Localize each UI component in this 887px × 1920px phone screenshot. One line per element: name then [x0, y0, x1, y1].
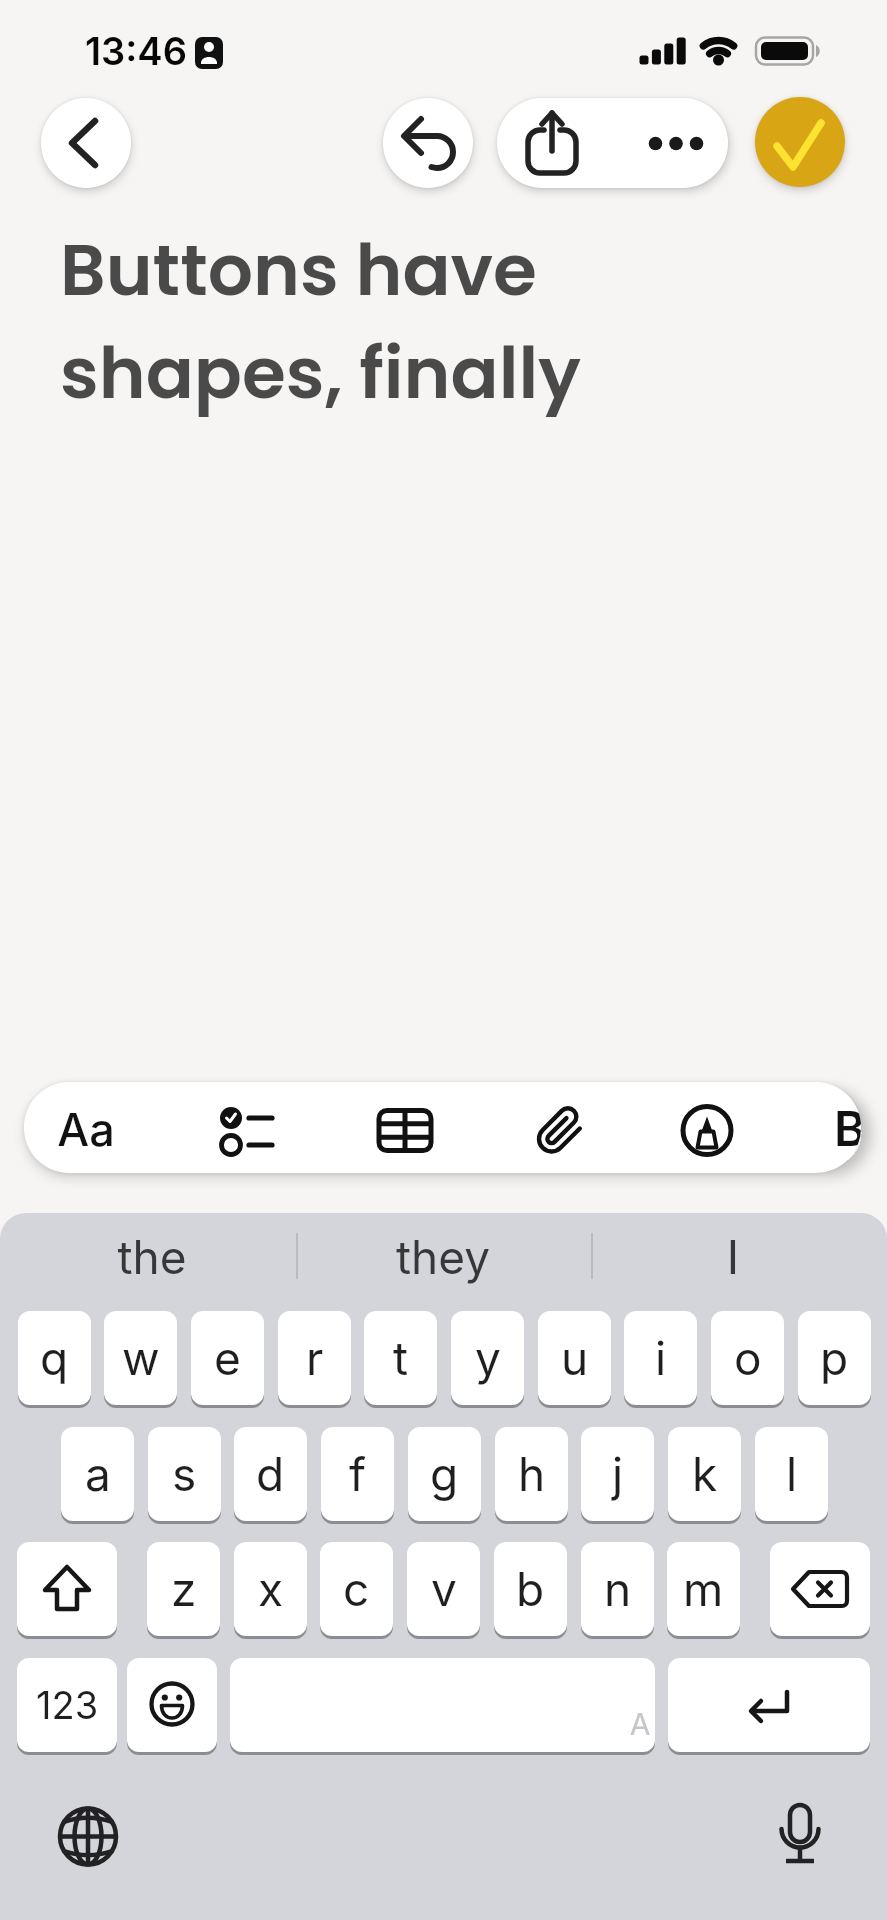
button[interactable]: [330, 1082, 460, 1173]
staticText: w: [122, 1330, 160, 1386]
staticText: x: [258, 1561, 284, 1617]
button[interactable]: [62, 1231, 242, 1291]
button[interactable]: d: [234, 1427, 307, 1524]
button[interactable]: q: [18, 1311, 91, 1408]
staticText: f: [349, 1446, 367, 1502]
button[interactable]: f: [321, 1427, 394, 1524]
button[interactable]: [630, 1082, 760, 1173]
button[interactable]: [497, 98, 613, 188]
button[interactable]: [41, 98, 131, 188]
staticText: r: [306, 1330, 324, 1386]
button[interactable]: w: [104, 1311, 177, 1408]
button[interactable]: [480, 1082, 610, 1173]
button[interactable]: 123: [17, 1658, 117, 1755]
button[interactable]: [613, 98, 728, 188]
button[interactable]: [127, 1658, 217, 1755]
staticText: v: [431, 1561, 457, 1617]
button[interactable]: [24, 1082, 164, 1173]
button[interactable]: g: [408, 1427, 481, 1524]
staticText: p: [820, 1330, 849, 1386]
button[interactable]: [230, 1658, 655, 1755]
staticText: a: [85, 1446, 111, 1502]
button[interactable]: p: [798, 1311, 871, 1408]
staticText: s: [172, 1446, 197, 1502]
button[interactable]: v: [407, 1542, 480, 1639]
button[interactable]: [770, 1542, 870, 1639]
button[interactable]: [755, 97, 845, 187]
staticText: q: [40, 1330, 69, 1386]
staticText: i: [655, 1330, 667, 1386]
staticText: l: [786, 1446, 798, 1502]
staticText: e: [214, 1330, 241, 1386]
button[interactable]: m: [667, 1542, 740, 1639]
button[interactable]: [180, 1082, 310, 1173]
staticText: t: [393, 1330, 409, 1386]
button[interactable]: e: [191, 1311, 264, 1408]
staticText: b: [516, 1561, 545, 1617]
staticText: Aa: [41, 1102, 131, 1173]
button[interactable]: b: [494, 1542, 567, 1639]
button[interactable]: r: [278, 1311, 351, 1408]
button[interactable]: [383, 98, 473, 188]
button[interactable]: n: [581, 1542, 654, 1639]
staticText: d: [256, 1446, 285, 1502]
button[interactable]: [762, 1795, 834, 1867]
staticText: z: [171, 1561, 197, 1617]
staticText: 13:46: [66, 28, 206, 1920]
button[interactable]: u: [538, 1311, 611, 1408]
button[interactable]: j: [581, 1427, 654, 1524]
button[interactable]: a: [61, 1427, 134, 1524]
button[interactable]: [668, 1658, 870, 1755]
button[interactable]: c: [320, 1542, 393, 1639]
button[interactable]: [52, 1800, 124, 1872]
staticText: y: [475, 1330, 501, 1386]
staticText: c: [343, 1561, 370, 1617]
staticText: n: [604, 1561, 632, 1617]
staticText: g: [430, 1446, 459, 1502]
button[interactable]: z: [147, 1542, 220, 1639]
button[interactable]: i: [624, 1311, 697, 1408]
staticText: h: [518, 1446, 546, 1502]
staticText: o: [734, 1330, 762, 1386]
staticText: they: [353, 1229, 533, 1920]
staticText: j: [612, 1446, 624, 1502]
staticText: I: [643, 1229, 823, 1920]
button[interactable]: s: [148, 1427, 221, 1524]
button[interactable]: o: [711, 1311, 784, 1408]
button[interactable]: h: [495, 1427, 568, 1524]
staticText: B: [834, 1099, 861, 1173]
button[interactable]: [353, 1231, 533, 1291]
button[interactable]: y: [451, 1311, 524, 1408]
staticText: k: [692, 1446, 718, 1502]
staticText: A: [600, 1706, 680, 1920]
staticText: m: [683, 1561, 724, 1617]
button[interactable]: t: [364, 1311, 437, 1408]
staticText: u: [561, 1330, 589, 1386]
button[interactable]: l: [755, 1427, 828, 1524]
staticText: the: [62, 1229, 242, 1920]
button[interactable]: x: [234, 1542, 307, 1639]
staticText: Buttons have shapes, finally: [60, 220, 860, 1920]
button[interactable]: k: [668, 1427, 741, 1524]
button[interactable]: [17, 1542, 117, 1639]
staticText: 123: [36, 1682, 99, 1728]
button[interactable]: [643, 1231, 823, 1291]
